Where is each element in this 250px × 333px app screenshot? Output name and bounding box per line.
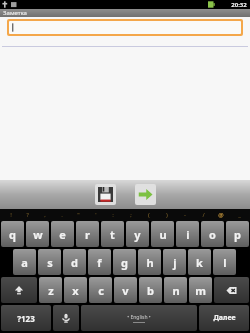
staticText: e [59, 227, 66, 242]
staticText: : [112, 211, 114, 219]
button[interactable]: i [176, 221, 199, 247]
staticText: h [146, 255, 154, 270]
button[interactable]: g [113, 249, 136, 275]
staticText: z [48, 283, 54, 298]
staticText: d [71, 255, 78, 270]
button[interactable]: _ [230, 209, 248, 221]
button[interactable]: r [76, 221, 99, 247]
button[interactable]: n [164, 277, 187, 303]
button[interactable]: Next [135, 184, 156, 205]
button[interactable]: ( [140, 209, 158, 221]
button[interactable]: ; [122, 209, 140, 221]
staticText: ?123 [17, 313, 35, 324]
button[interactable]: h [138, 249, 161, 275]
button[interactable]: k [188, 249, 211, 275]
button[interactable] [1, 277, 37, 303]
button[interactable]: t [101, 221, 124, 247]
staticText: g [121, 255, 128, 270]
button[interactable]: o [201, 221, 224, 247]
staticText: p [234, 227, 241, 242]
staticText: w [33, 227, 43, 242]
button[interactable]: - [176, 209, 194, 221]
button[interactable]: u [151, 221, 174, 247]
staticText: x [72, 283, 79, 298]
button[interactable]: v [114, 277, 137, 303]
button[interactable]: Save [95, 184, 116, 205]
staticText: Заметка [3, 9, 27, 17]
button[interactable]: ' [87, 209, 104, 221]
staticText: v [122, 283, 129, 298]
staticText: t [110, 227, 115, 242]
button[interactable] [9, 21, 241, 34]
staticText: / [202, 211, 205, 219]
button[interactable]: f [88, 249, 111, 275]
button[interactable]: : [104, 209, 122, 221]
staticText: n [172, 283, 180, 298]
button[interactable]: ! [2, 209, 19, 221]
button[interactable]: s [38, 249, 61, 275]
staticText: - [184, 211, 186, 219]
button[interactable]: m [189, 277, 212, 303]
button[interactable]: l [213, 249, 236, 275]
staticText: . [61, 211, 63, 219]
staticText: ' [95, 211, 97, 219]
staticText: b [147, 283, 154, 298]
staticText: @ [218, 211, 224, 219]
staticText: Далее [213, 313, 236, 323]
staticText: " [77, 211, 80, 219]
staticText: o [209, 227, 216, 242]
staticText: m [195, 283, 206, 298]
button[interactable]: Далее [199, 305, 249, 331]
staticText: k [196, 255, 203, 270]
staticText: 20:32 [231, 1, 247, 9]
button[interactable]: , [36, 209, 53, 221]
staticText: a [21, 255, 28, 270]
button[interactable]: q [1, 221, 24, 247]
button[interactable]: ?123 [1, 305, 51, 331]
button[interactable]: e [51, 221, 74, 247]
staticText: y [134, 227, 141, 242]
button[interactable]: " [70, 209, 87, 221]
staticText: c [98, 283, 104, 298]
button[interactable]: z [39, 277, 62, 303]
button[interactable]: ? [19, 209, 36, 221]
staticText: f [97, 255, 102, 270]
button[interactable]: p [226, 221, 249, 247]
button[interactable]: • English • [81, 305, 197, 331]
button[interactable]: d [63, 249, 86, 275]
staticText: s [47, 255, 53, 270]
button[interactable]: b [139, 277, 162, 303]
button[interactable]: @ [212, 209, 230, 221]
staticText: ( [148, 211, 150, 219]
staticText: i [186, 227, 190, 242]
button[interactable]: y [126, 221, 149, 247]
button[interactable]: a [13, 249, 36, 275]
button[interactable]: ) [158, 209, 176, 221]
button[interactable]: c [89, 277, 112, 303]
staticText: u [159, 227, 167, 242]
staticText: _ [238, 211, 241, 219]
button[interactable]: w [26, 221, 49, 247]
staticText: ) [166, 211, 168, 219]
staticText: ? [26, 211, 29, 219]
button[interactable] [53, 305, 79, 331]
staticText: • English • [127, 314, 151, 321]
staticText: r [85, 227, 90, 242]
staticText: j [173, 255, 177, 270]
button[interactable]: x [64, 277, 87, 303]
button[interactable] [214, 277, 249, 303]
button[interactable]: / [194, 209, 212, 221]
staticText: , [44, 211, 46, 219]
staticText: l [223, 255, 227, 270]
staticText: ! [10, 211, 12, 219]
button[interactable]: j [163, 249, 186, 275]
staticText: ; [130, 211, 132, 219]
staticText: q [9, 227, 16, 242]
